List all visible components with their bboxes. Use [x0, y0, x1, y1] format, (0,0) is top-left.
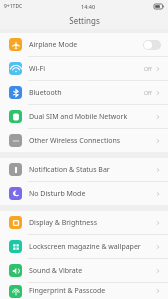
staticText: No Disturb Mode [29, 189, 86, 199]
button[interactable]: No Disturb Mode [0, 182, 168, 205]
staticText: 14:40 [81, 3, 96, 10]
button[interactable]: Dual SIM and Mobile Network [0, 105, 168, 129]
button[interactable]: Other Wireless Connections [0, 129, 168, 152]
staticText: 9+1TDC [4, 3, 23, 10]
staticText: Display & Brightness [29, 218, 98, 228]
staticText: Off [144, 89, 152, 96]
staticText: Bluetooth [29, 88, 62, 98]
button[interactable]: Wi-Fi [0, 57, 168, 81]
staticText: Notification & Status Bar [29, 165, 110, 175]
staticText: Lockscreen magazine & wallpaper [29, 242, 141, 252]
staticText: Sound & Vibrate [29, 266, 83, 276]
button[interactable]: Fingerprint & Passcode [0, 283, 168, 299]
staticText: Wi-Fi [29, 64, 46, 74]
button[interactable]: Airplane Mode toggle [143, 40, 161, 50]
button[interactable]: Notification & Status Bar [0, 158, 168, 182]
button[interactable]: Display & Brightness [0, 211, 168, 235]
staticText: Airplane Mode [29, 40, 78, 50]
staticText: Other Wireless Connections [29, 136, 121, 146]
staticText: Fingerprint & Passcode [29, 286, 106, 296]
staticText: Settings [69, 15, 100, 26]
button[interactable]: Airplane Mode [0, 33, 168, 57]
button[interactable]: Sound & Vibrate [0, 259, 168, 283]
staticText: Off [144, 65, 152, 72]
staticText: Dual SIM and Mobile Network [29, 112, 128, 122]
button[interactable]: Lockscreen magazine & wallpaper [0, 235, 168, 259]
button[interactable]: Bluetooth [0, 81, 168, 105]
